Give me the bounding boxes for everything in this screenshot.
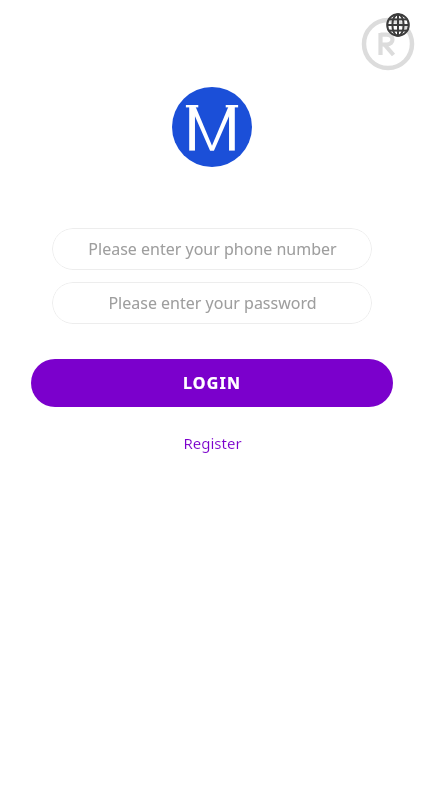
button[interactable]: LOGIN (31, 359, 393, 407)
staticText: LOGIN (183, 372, 242, 394)
button[interactable]: Please enter your password (52, 282, 372, 324)
button[interactable]: Register (152, 428, 272, 458)
staticText: Please enter your phone number (88, 238, 337, 260)
button[interactable]: Change language (384, 11, 412, 39)
staticText: Please enter your password (108, 292, 317, 314)
button[interactable]: Please enter your phone number (52, 228, 372, 270)
staticText: Register (183, 433, 242, 453)
